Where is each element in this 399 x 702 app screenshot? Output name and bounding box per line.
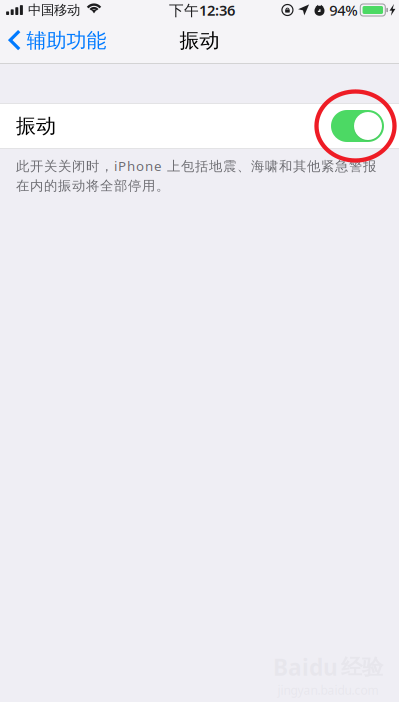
staticText: Baidu (273, 652, 338, 682)
button[interactable]: 振动 (0, 103, 399, 149)
staticText: 振动 (179, 28, 219, 53)
staticText: 辅助功能 (26, 28, 106, 53)
staticText: 经验 (341, 654, 383, 680)
staticText: 中国移动 (28, 2, 80, 18)
staticText: 振动 (16, 114, 56, 138)
staticText: 此开关关闭时，iPhone 上包括地震、海啸和其他紧急警报 (16, 157, 376, 175)
button[interactable]: 辅助功能 (0, 21, 116, 59)
staticText: 下午12:36 (169, 0, 235, 20)
staticText: 在内的振动将全部停用。 (16, 178, 169, 194)
staticText: 94% (329, 0, 357, 20)
